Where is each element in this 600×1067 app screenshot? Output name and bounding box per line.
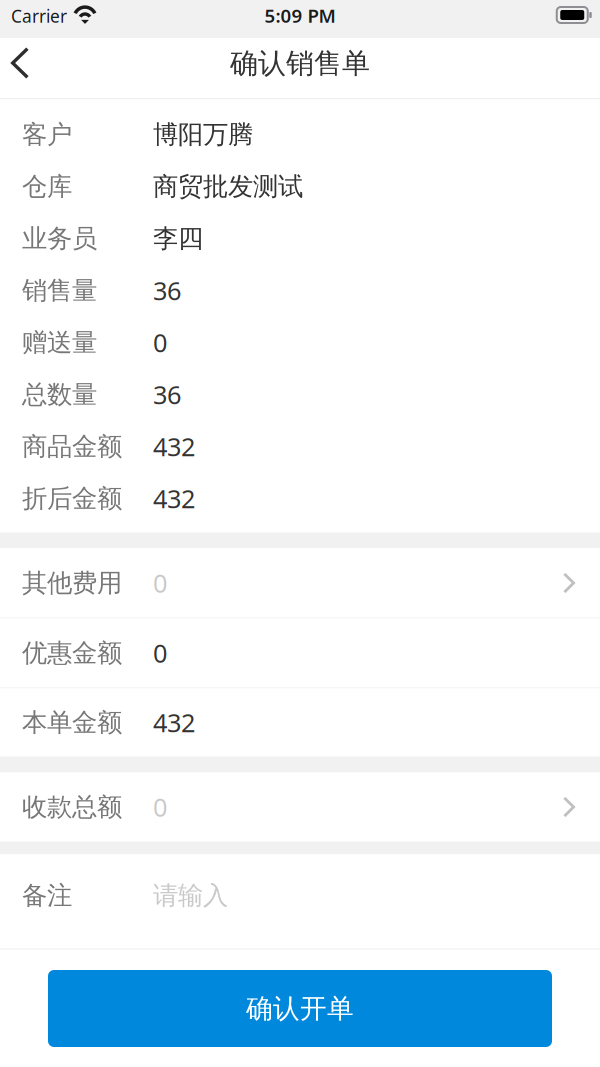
button[interactable]: Back <box>0 38 47 98</box>
button[interactable]: 其他费用 <box>0 548 600 617</box>
staticText: 0 <box>153 790 167 824</box>
staticText: 总数量 <box>22 379 97 410</box>
button[interactable]: 备注 <box>0 854 600 948</box>
staticText: 5:09 PM <box>264 3 335 28</box>
staticText: 赠送量 <box>22 327 97 358</box>
staticText: 确认开单 <box>246 992 354 1025</box>
staticText: 其他费用 <box>22 567 122 598</box>
staticText: 销售量 <box>22 275 97 306</box>
staticText: 优惠金额 <box>22 637 122 668</box>
staticText: 李四 <box>153 223 203 254</box>
staticText: 确认销售单 <box>230 46 370 81</box>
staticText: 仓库 <box>22 171 72 202</box>
staticText: 请输入 <box>153 880 228 911</box>
button[interactable]: 确认开单 <box>48 970 552 1047</box>
staticText: 本单金额 <box>22 707 122 738</box>
staticText: 客户 <box>22 119 72 150</box>
staticText: 商品金额 <box>22 431 122 462</box>
staticText: 折后金额 <box>22 483 122 514</box>
staticText: 0 <box>153 566 167 600</box>
staticText: 0 <box>153 326 167 359</box>
staticText: 商贸批发测试 <box>153 171 303 202</box>
staticText: 432 <box>153 706 195 739</box>
staticText: 432 <box>153 482 195 515</box>
staticText: 0 <box>153 636 167 670</box>
button[interactable]: 收款总额 <box>0 772 600 841</box>
staticText: 业务员 <box>22 223 97 254</box>
staticText: 收款总额 <box>22 791 122 822</box>
staticText: 36 <box>153 274 181 307</box>
staticText: 36 <box>153 378 181 411</box>
staticText: Carrier <box>11 4 67 27</box>
staticText: 备注 <box>22 880 72 911</box>
staticText: 432 <box>153 430 195 463</box>
staticText: 博阳万腾 <box>153 119 253 150</box>
